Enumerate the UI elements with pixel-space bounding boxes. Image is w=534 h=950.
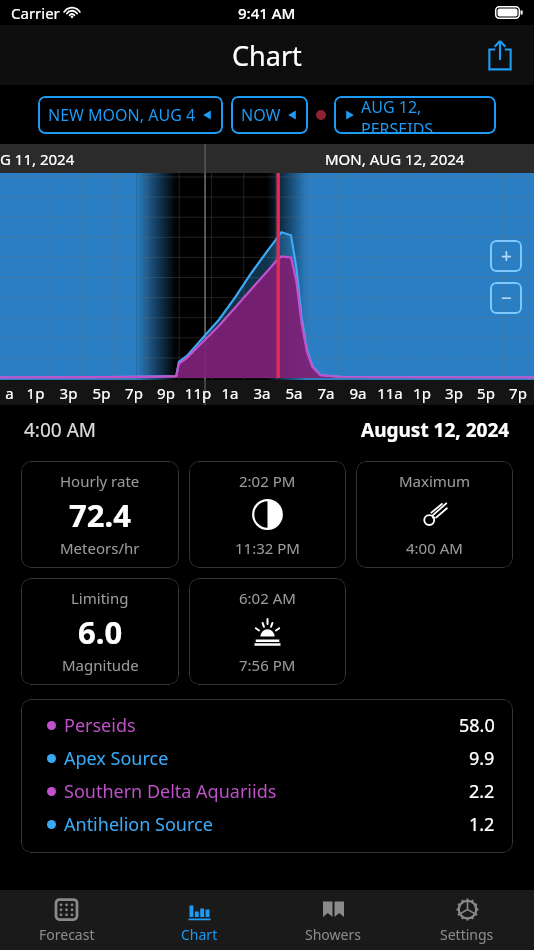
staticText: Forecast	[39, 925, 95, 944]
staticText: 1.2	[469, 812, 495, 837]
staticText: −	[501, 285, 512, 311]
button[interactable]: Limiting	[21, 578, 179, 685]
staticText: Chart	[232, 37, 302, 74]
staticText: Southern Delta Aquariids	[64, 779, 469, 804]
staticText: 72.4	[69, 494, 131, 536]
staticText: 58.0	[459, 713, 495, 738]
staticText: 2.2	[469, 779, 495, 804]
button[interactable]: Forecast	[0, 890, 133, 950]
staticText: Perseids	[64, 713, 459, 738]
staticText: Maximum	[399, 471, 471, 491]
staticText: Limiting	[71, 588, 129, 608]
button[interactable]: Apex Source	[47, 742, 495, 775]
staticText: 9p	[150, 383, 182, 403]
button[interactable]: AUG 12, PERSEIDS	[334, 96, 496, 134]
staticText: 9a	[342, 383, 374, 403]
staticText: 4:00 AM	[24, 417, 97, 443]
button[interactable]: Chart	[133, 890, 266, 950]
staticText: 3a	[246, 383, 278, 403]
staticText: 7p	[118, 383, 150, 403]
staticText: 4:00 AM	[406, 538, 463, 558]
button[interactable]: Maximum	[356, 461, 513, 568]
staticText: 11p	[182, 383, 214, 403]
button[interactable]: Antihelion Source	[47, 808, 495, 841]
staticText: Antihelion Source	[64, 812, 469, 837]
staticText: AUG 12, PERSEIDS	[361, 96, 486, 134]
staticText: Apex Source	[64, 746, 469, 771]
button[interactable]: Perseids	[47, 709, 495, 742]
staticText: Magnitude	[62, 655, 139, 675]
staticText: 6.0	[78, 611, 123, 653]
staticText: 1p	[19, 383, 52, 403]
button[interactable]: Zoom out	[490, 282, 522, 314]
staticText: Hourly rate	[60, 471, 140, 491]
staticText: a	[0, 383, 19, 403]
staticText: Carrier	[11, 3, 60, 23]
staticText: 9.9	[469, 746, 495, 771]
staticText: 3p	[52, 383, 85, 403]
staticText: Showers	[305, 925, 361, 944]
button[interactable]: Share	[480, 35, 520, 75]
button[interactable]: 2:02 PM	[189, 461, 346, 568]
button[interactable]: NEW MOON, AUG 4	[38, 96, 223, 134]
staticText: 7p	[502, 383, 534, 403]
staticText: 5a	[278, 383, 310, 403]
staticText: 7a	[310, 383, 342, 403]
staticText: 3p	[438, 383, 470, 403]
staticText: Chart	[181, 925, 218, 944]
staticText: NEW MOON, AUG 4	[48, 104, 196, 126]
staticText: 11a	[374, 383, 406, 403]
staticText: 1a	[214, 383, 246, 403]
staticText: NOW	[241, 104, 281, 126]
staticText: August 12, 2024	[361, 417, 510, 443]
button[interactable]: 6:02 AM	[189, 578, 346, 685]
staticText: MON, AUG 12, 2024	[325, 149, 465, 169]
staticText: Settings	[440, 925, 494, 944]
staticText: 9:41 AM	[238, 3, 296, 23]
staticText: 11:32 PM	[235, 538, 300, 558]
button[interactable]: NOW	[231, 96, 308, 134]
button[interactable]: Zoom in	[490, 240, 522, 272]
staticText: 5p	[470, 383, 502, 403]
staticText: Meteors/hr	[60, 538, 140, 558]
button[interactable]: Settings	[400, 890, 534, 950]
staticText: 1p	[406, 383, 438, 403]
staticText: 7:56 PM	[239, 655, 296, 675]
button[interactable]: Showers	[266, 890, 400, 950]
staticText: 6:02 AM	[239, 588, 296, 608]
staticText: +	[501, 243, 512, 269]
staticText: 2:02 PM	[239, 471, 296, 491]
button[interactable]: Hourly rate	[21, 461, 179, 568]
staticText: 5p	[85, 383, 118, 403]
staticText: G 11, 2024	[0, 149, 75, 169]
button[interactable]: Southern Delta Aquariids	[47, 775, 495, 808]
